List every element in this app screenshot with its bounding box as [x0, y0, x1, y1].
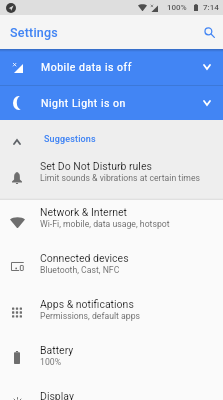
button[interactable]: Search [195, 15, 223, 49]
staticText: Network & Internet [40, 206, 128, 218]
staticText: Bluetooth, Cast, NFC [40, 265, 120, 275]
staticText: Night Light is on [41, 97, 126, 109]
button[interactable]: Mobile data is off [0, 49, 223, 85]
button[interactable]: Suggestions [0, 120, 223, 154]
staticText: Limit sounds & vibrations at certain tim… [40, 173, 201, 183]
button[interactable]: Network & Internet [0, 200, 223, 246]
button[interactable]: Battery [0, 338, 223, 384]
staticText: 100% [40, 357, 62, 367]
button[interactable]: Apps & notifications [0, 292, 223, 338]
button[interactable]: Set Do Not Disturb rules [0, 154, 223, 200]
staticText: Display [40, 390, 74, 400]
staticText: 7:14 [203, 3, 219, 12]
staticText: Permissions, default apps [40, 311, 141, 321]
staticText: Wi-Fi, mobile, data usage, hotspot [40, 219, 170, 229]
staticText: Set Do Not Disturb rules [40, 160, 152, 172]
button[interactable]: Display [0, 384, 223, 400]
staticText: Battery [40, 344, 74, 356]
button[interactable]: Night Light is on [0, 85, 223, 120]
staticText: Connected devices [40, 252, 129, 264]
staticText: Apps & notifications [40, 298, 134, 310]
staticText: 100% [167, 3, 187, 12]
staticText: Suggestions [44, 134, 96, 145]
button[interactable]: Connected devices [0, 246, 223, 292]
staticText: Mobile data is off [41, 61, 132, 73]
staticText: Settings [10, 25, 58, 40]
